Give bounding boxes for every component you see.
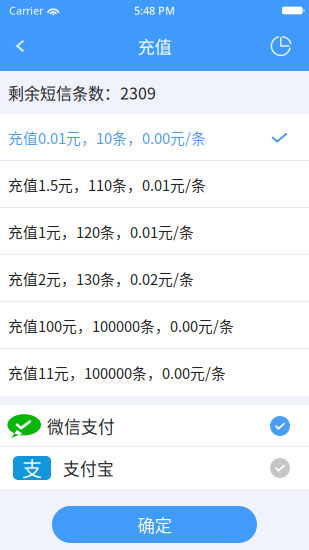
button[interactable]: 充值100元，100000条，0.00元/条: [0, 302, 309, 349]
button[interactable]: 充值2元，130条，0.02元/条: [0, 255, 309, 302]
staticText: 充值11元，100000条，0.00元/条: [8, 362, 226, 383]
button[interactable]: 确定: [52, 506, 257, 543]
staticText: 充值2元，130条，0.02元/条: [8, 268, 194, 289]
staticText: 支: [22, 453, 42, 482]
staticText: 充值1元，120条，0.01元/条: [8, 221, 194, 242]
button[interactable]: 充值1元，120条，0.01元/条: [0, 208, 309, 255]
staticText: 充值100元，100000条，0.00元/条: [8, 315, 234, 336]
button[interactable]: 支: [0, 447, 309, 489]
staticText: 充值0.01元，10条，0.00元/条: [8, 127, 206, 148]
staticText: Carrier: [9, 3, 43, 18]
staticText: 充值: [137, 33, 171, 59]
button[interactable]: 充值0.01元，10条，0.00元/条: [0, 114, 309, 161]
staticText: 支付宝: [63, 456, 114, 480]
button[interactable]: 充值1.5元，110条，0.01元/条: [0, 161, 309, 208]
button[interactable]: 微信支付: [0, 405, 309, 447]
staticText: 剩余短信条数：2309: [8, 81, 156, 104]
button[interactable]: 充值11元，100000条，0.00元/条: [0, 349, 309, 396]
staticText: 充值1.5元，110条，0.01元/条: [8, 174, 206, 195]
staticText: 确定: [137, 512, 171, 537]
button[interactable]: Statistics: [257, 21, 309, 71]
staticText: 微信支付: [47, 414, 115, 438]
button[interactable]: Back: [0, 21, 42, 71]
staticText: 5:48 PM: [134, 3, 175, 18]
